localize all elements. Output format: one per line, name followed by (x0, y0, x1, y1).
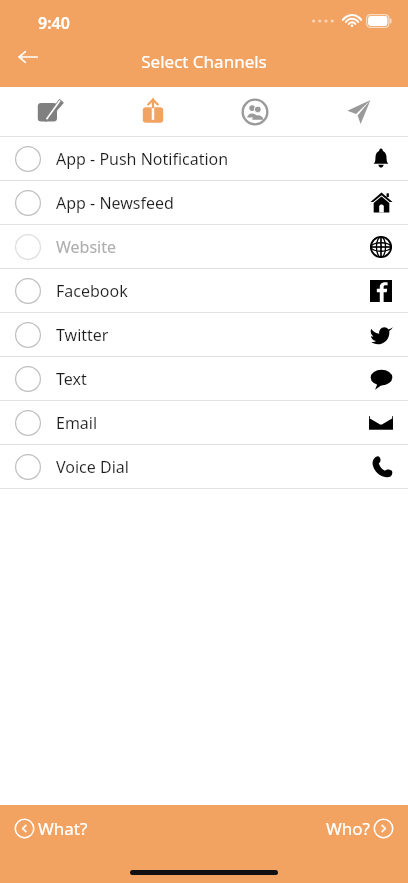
staticText: Facebook (56, 280, 354, 302)
button[interactable]: App - Push Notification (0, 137, 408, 180)
staticText: Voice Dial (56, 456, 354, 478)
staticText: Text (56, 368, 354, 390)
button[interactable]: Website (0, 225, 408, 268)
staticText: What? (38, 817, 88, 840)
staticText: Website (56, 236, 354, 258)
button[interactable]: Who? (322, 811, 398, 846)
button[interactable]: Contacts (204, 87, 306, 136)
button[interactable]: Twitter (0, 313, 408, 356)
staticText: Email (56, 412, 354, 434)
staticText: Select Channels (141, 50, 267, 73)
button[interactable]: App - Newsfeed (0, 181, 408, 224)
staticText: Who? (326, 817, 370, 840)
button[interactable]: Send (306, 87, 408, 136)
button[interactable]: Text (0, 357, 408, 400)
button[interactable]: What? (10, 811, 92, 846)
button[interactable]: Compose (0, 87, 102, 136)
button[interactable]: Back (6, 35, 50, 79)
staticText: Twitter (56, 324, 354, 346)
button[interactable]: Voice Dial (0, 445, 408, 488)
staticText: App - Newsfeed (56, 192, 354, 214)
button[interactable]: Facebook (0, 269, 408, 312)
button[interactable]: Share (102, 87, 204, 136)
staticText: App - Push Notification (56, 148, 354, 170)
staticText: 9:40 (38, 12, 70, 34)
button[interactable]: Email (0, 401, 408, 444)
